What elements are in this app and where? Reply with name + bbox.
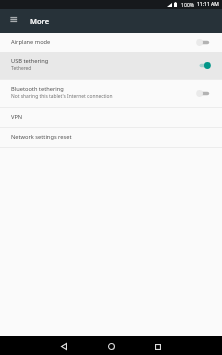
button[interactable]: Airplane mode: [0, 33, 222, 52]
button[interactable]: Open navigation drawer: [0, 9, 24, 33]
staticText: Bluetooth tethering: [11, 85, 64, 93]
staticText: USB tethering: [11, 57, 49, 65]
button[interactable]: Bluetooth tethering: [0, 80, 222, 107]
staticText: Tethered: [11, 65, 32, 72]
staticText: VPN: [11, 113, 23, 121]
button[interactable]: Network settings reset: [0, 128, 222, 147]
button[interactable]: Toggle: [196, 37, 212, 48]
button[interactable]: USB tethering: [0, 52, 222, 79]
staticText: Not sharing this tablet's Internet conne…: [11, 93, 113, 100]
staticText: More: [30, 16, 50, 26]
staticText: 100%: [181, 1, 195, 8]
button[interactable]: Toggle: [196, 60, 212, 71]
staticText: 11:11 AM: [197, 1, 219, 8]
button[interactable]: Toggle: [196, 88, 212, 99]
staticText: Network settings reset: [11, 133, 72, 141]
staticText: Airplane mode: [11, 38, 51, 46]
button[interactable]: Recent apps: [146, 336, 170, 355]
button[interactable]: VPN: [0, 108, 222, 127]
button[interactable]: Back: [52, 336, 76, 355]
button[interactable]: Home: [99, 336, 123, 355]
